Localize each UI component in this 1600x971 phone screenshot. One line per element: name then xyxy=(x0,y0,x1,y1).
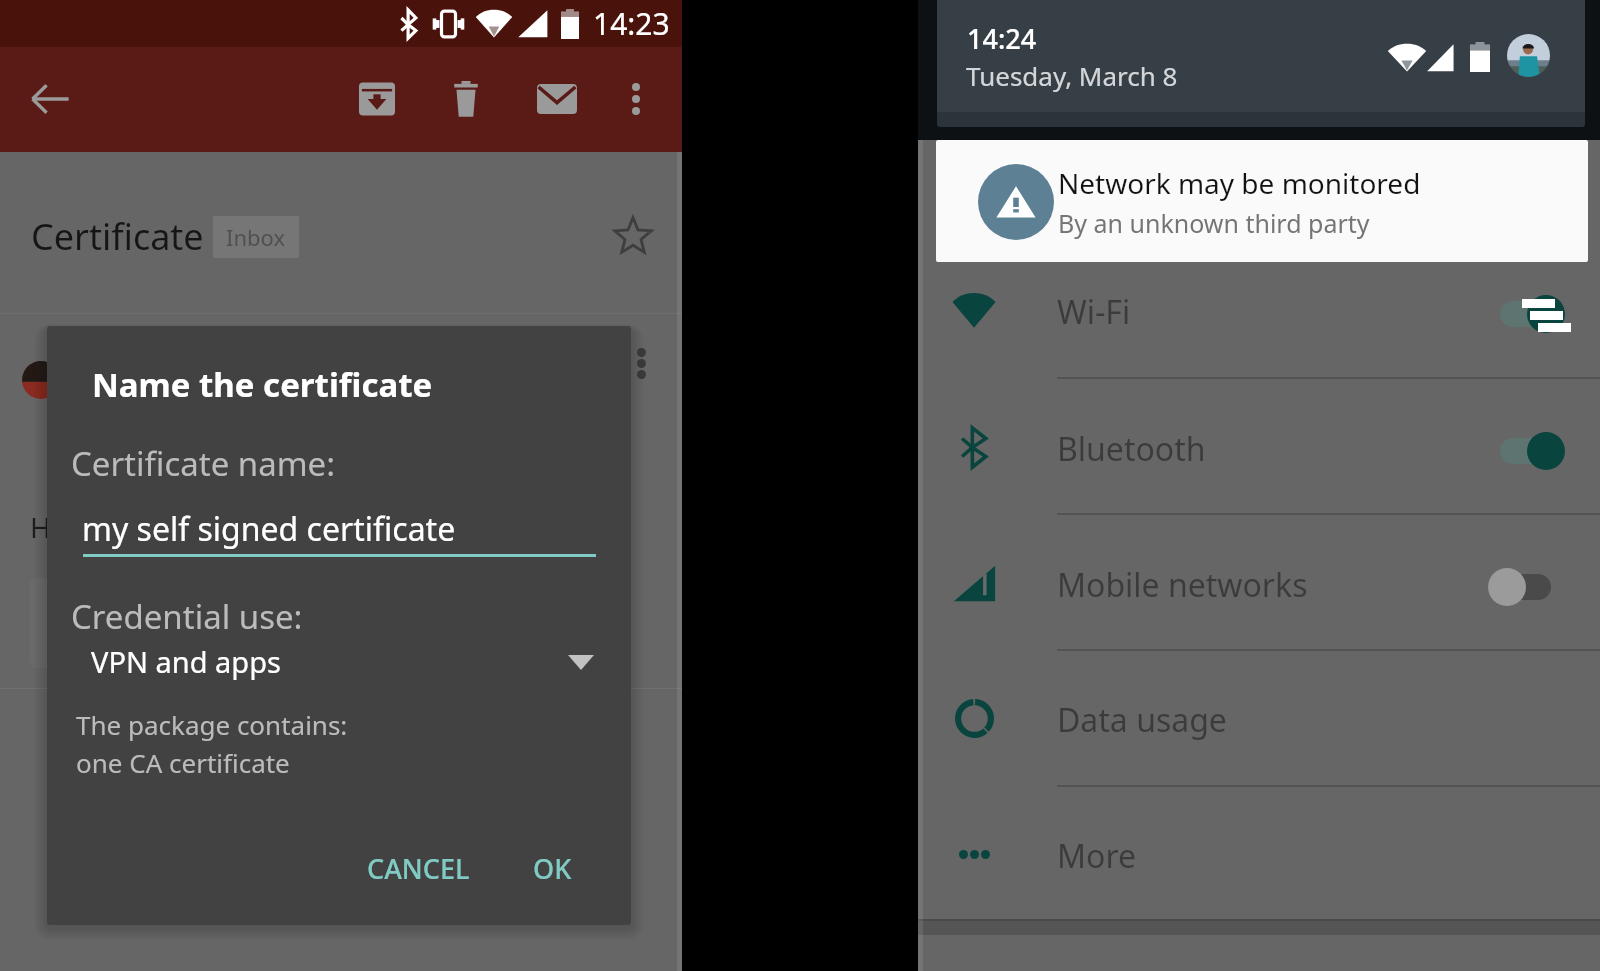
staticText: Mobile networks xyxy=(1057,563,1308,607)
button[interactable]: More xyxy=(918,786,1600,922)
button[interactable]: Delete xyxy=(443,76,489,122)
button[interactable]: Archive xyxy=(354,76,400,122)
staticText: By an unknown third party xyxy=(1058,206,1370,240)
staticText: Wi-Fi xyxy=(1057,290,1131,334)
staticText: Name the certificate xyxy=(92,362,433,407)
staticText: one CA certificate xyxy=(76,745,290,780)
staticText: H xyxy=(30,508,51,546)
staticText: 14:23 xyxy=(593,3,670,44)
staticText: VPN and apps xyxy=(91,642,281,681)
button[interactable]: Mobile networks xyxy=(918,515,1600,651)
button[interactable]: Bluetooth xyxy=(918,379,1600,515)
button[interactable]: Wi-Fi xyxy=(918,242,1600,378)
button[interactable]: Mark as unread xyxy=(534,76,580,122)
staticText: my self signed certificate xyxy=(82,507,456,551)
button[interactable]: Data usage xyxy=(918,650,1600,786)
staticText: 14:24 xyxy=(967,20,1037,57)
staticText: Credential use: xyxy=(71,594,303,639)
button[interactable]: More options xyxy=(613,76,659,122)
staticText: Tuesday, March 8 xyxy=(966,58,1178,93)
staticText: The package contains: xyxy=(76,707,348,742)
staticText: Network may be monitored xyxy=(1058,164,1421,202)
staticText: CANCEL xyxy=(367,850,470,887)
staticText: Certificate xyxy=(31,212,204,261)
staticText: Certificate name: xyxy=(71,441,336,486)
staticText: Bluetooth xyxy=(1057,427,1206,471)
button[interactable]: CANCEL xyxy=(346,834,491,903)
staticText: Inbox xyxy=(226,222,286,252)
staticText: Data usage xyxy=(1057,698,1227,742)
button[interactable]: Navigate up xyxy=(27,76,73,122)
button[interactable]: OK xyxy=(512,834,593,903)
staticText: OK xyxy=(533,850,572,887)
staticText: More xyxy=(1057,834,1137,878)
button[interactable]: Star xyxy=(608,211,658,261)
